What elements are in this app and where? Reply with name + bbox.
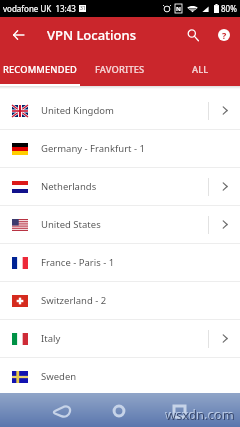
button[interactable]: Switzerland - 2	[0, 282, 240, 319]
staticText: wsxdn.com	[165, 405, 234, 423]
button[interactable]: Back	[39, 393, 85, 427]
button[interactable]: Search	[177, 17, 208, 53]
staticText: United Kingdom	[41, 104, 114, 117]
staticText: Switzerland - 2	[41, 294, 107, 307]
button[interactable]: Back	[0, 17, 36, 53]
button[interactable]: Italy	[0, 320, 240, 357]
button[interactable]: Show servers	[209, 320, 240, 357]
staticText: ?	[222, 29, 227, 41]
staticText: wsxdn.com	[166, 406, 235, 424]
staticText: Germany - Frankfurt - 1	[41, 142, 145, 155]
staticText: FAVORITES	[95, 63, 145, 76]
button[interactable]: Home	[99, 393, 139, 427]
staticText: vodafone UK 13:43	[3, 3, 76, 14]
staticText: VPN Locations	[47, 26, 136, 44]
staticText: Sweden	[41, 370, 77, 383]
button[interactable]: ALL	[160, 53, 240, 86]
staticText: Netherlands	[41, 180, 97, 193]
button[interactable]: France - Paris - 1	[0, 244, 240, 281]
button[interactable]: Help	[208, 17, 240, 53]
button[interactable]: United Kingdom	[0, 92, 240, 129]
button[interactable]: Show servers	[209, 206, 240, 243]
staticText: RECOMMENDED	[3, 63, 77, 76]
button[interactable]: Recent apps	[159, 393, 199, 427]
staticText: ALL	[192, 63, 209, 76]
staticText: France - Paris - 1	[41, 256, 115, 269]
staticText: United States	[41, 218, 101, 231]
button[interactable]: Show servers	[209, 168, 240, 205]
staticText: Italy	[41, 332, 61, 345]
staticText: 31	[80, 5, 86, 12]
button[interactable]: Germany - Frankfurt - 1	[0, 130, 240, 167]
staticText: N	[176, 5, 181, 13]
button[interactable]: Netherlands	[0, 168, 240, 205]
button[interactable]: RECOMMENDED	[0, 53, 80, 86]
button[interactable]: Sweden	[0, 358, 240, 395]
button[interactable]: Show servers	[209, 92, 240, 129]
button[interactable]: United States	[0, 206, 240, 243]
staticText: 80%	[221, 3, 237, 14]
button[interactable]: FAVORITES	[80, 53, 160, 86]
